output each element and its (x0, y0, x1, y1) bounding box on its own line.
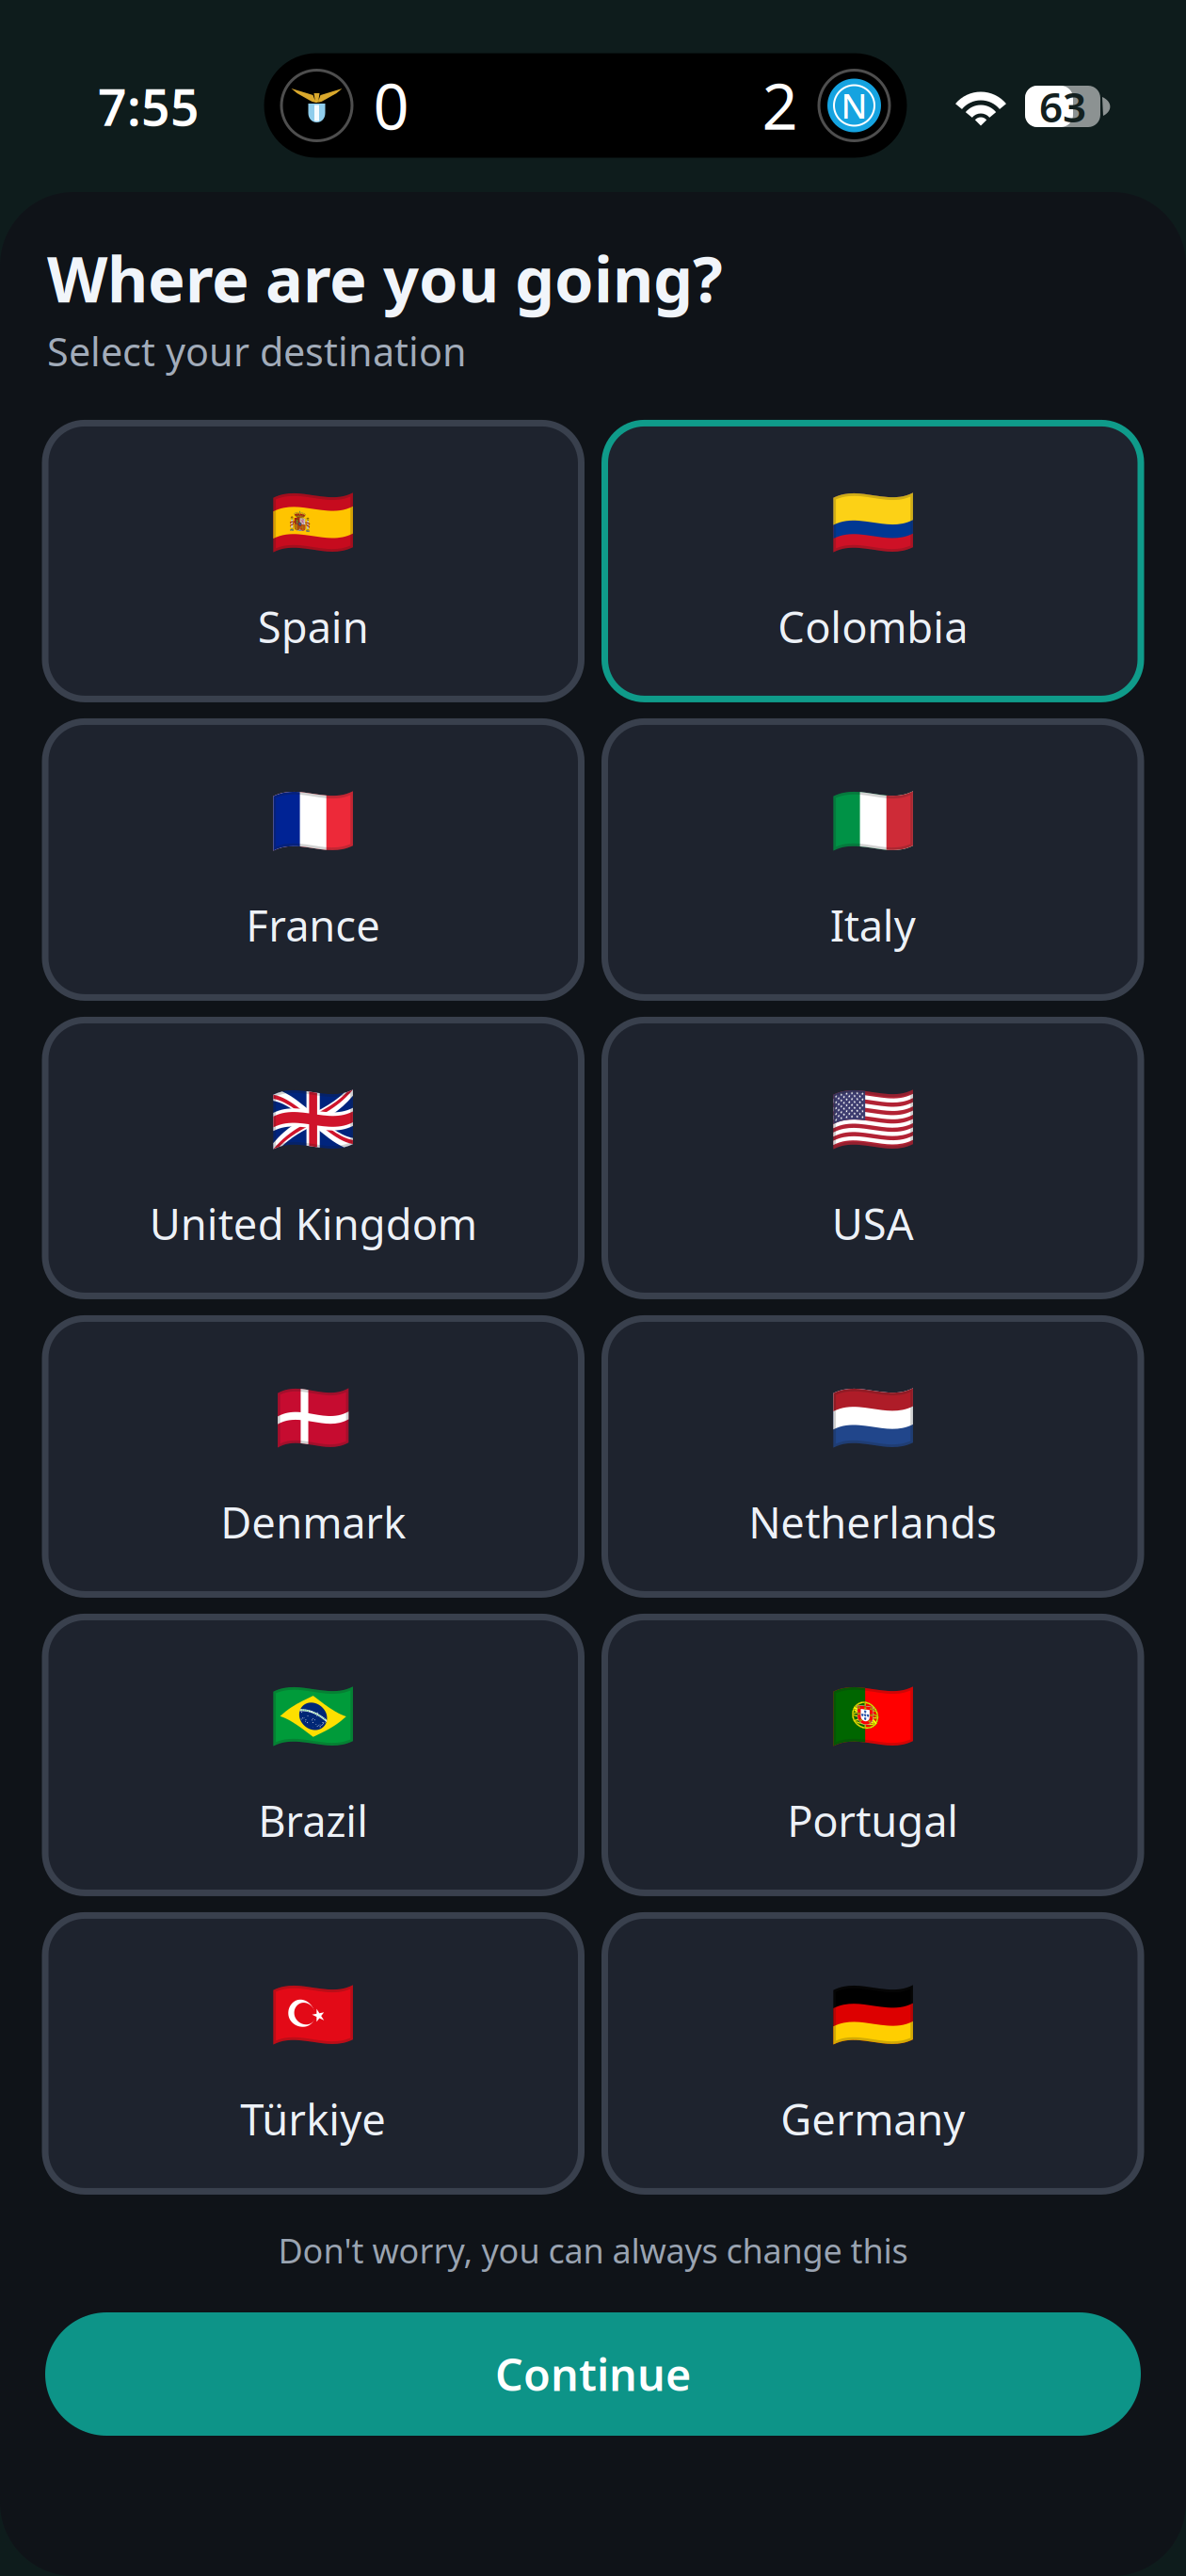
staticText: USA (832, 1195, 914, 1252)
staticText: 🇺🇸 (830, 1080, 916, 1159)
button[interactable]: 🇪🇸 (45, 423, 581, 699)
button[interactable]: 🇹🇷 (45, 1915, 581, 2191)
button[interactable]: 🇳🇱 (605, 1319, 1141, 1594)
staticText: 🇹🇷 (270, 1976, 356, 2055)
staticText: 🇩🇰 (270, 1379, 356, 1458)
staticText: 63 (1039, 79, 1086, 134)
staticText: Türkiye (240, 2090, 386, 2147)
staticText: 2 (762, 64, 798, 147)
staticText: Select your destination (47, 325, 467, 377)
staticText: France (246, 897, 380, 953)
staticText: Germany (781, 2090, 965, 2147)
staticText: 🇮🇹 (830, 782, 916, 861)
button[interactable]: 🇨🇴 (605, 423, 1141, 699)
staticText: 🇨🇴 (830, 483, 916, 562)
staticText: N (841, 83, 867, 128)
staticText: Spain (258, 598, 369, 655)
staticText: 🇧🇷 (270, 1677, 356, 1756)
staticText: 🇬🇧 (270, 1080, 356, 1159)
staticText: 7:55 (98, 73, 200, 140)
staticText: 🇪🇸 (270, 483, 356, 562)
staticText: United Kingdom (149, 1195, 477, 1252)
staticText: Denmark (220, 1493, 406, 1550)
staticText: 🇫🇷 (270, 782, 356, 861)
staticText: Portugal (787, 1792, 958, 1849)
button[interactable]: 🇵🇹 (605, 1617, 1141, 1893)
staticText: Colombia (778, 598, 968, 655)
staticText: Brazil (258, 1792, 368, 1849)
button[interactable]: 🇮🇹 (605, 722, 1141, 997)
staticText: 0 (373, 64, 409, 147)
staticText: 🇳🇱 (830, 1379, 916, 1458)
button[interactable]: 🇩🇰 (45, 1319, 581, 1594)
button[interactable]: 🇬🇧 (45, 1020, 581, 1296)
button[interactable]: 🇺🇸 (605, 1020, 1141, 1296)
staticText: Continue (495, 2345, 691, 2403)
staticText: Netherlands (748, 1493, 997, 1550)
button[interactable]: 🇫🇷 (45, 722, 581, 997)
staticText: Where are you going? (47, 236, 723, 320)
button[interactable]: Continue (45, 2312, 1141, 2436)
staticText: Don't worry, you can always change this (278, 2228, 908, 2273)
staticText: 🇵🇹 (830, 1677, 916, 1756)
button[interactable]: 🇧🇷 (45, 1617, 581, 1893)
button[interactable]: 🇩🇪 (605, 1915, 1141, 2191)
staticText: 🇩🇪 (830, 1976, 916, 2055)
staticText: Italy (830, 897, 916, 953)
